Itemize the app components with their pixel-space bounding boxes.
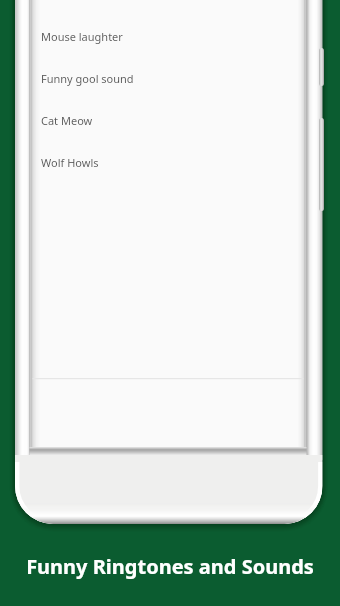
staticText: Cat Meow xyxy=(41,113,93,128)
button[interactable]: Mouse laughter xyxy=(31,15,306,57)
staticText: Mouse laughter xyxy=(41,29,123,44)
button[interactable]: Advertisement banner xyxy=(31,397,306,466)
staticText: Funny Ringtones and Sounds xyxy=(0,553,340,580)
button[interactable]: Cat Meow xyxy=(31,99,306,141)
button[interactable]: Wolf Howls xyxy=(31,141,306,183)
staticText: Funny gool sound xyxy=(41,71,134,86)
staticText: Wolf Howls xyxy=(41,155,99,170)
button[interactable]: Funny gool sound xyxy=(31,57,306,99)
